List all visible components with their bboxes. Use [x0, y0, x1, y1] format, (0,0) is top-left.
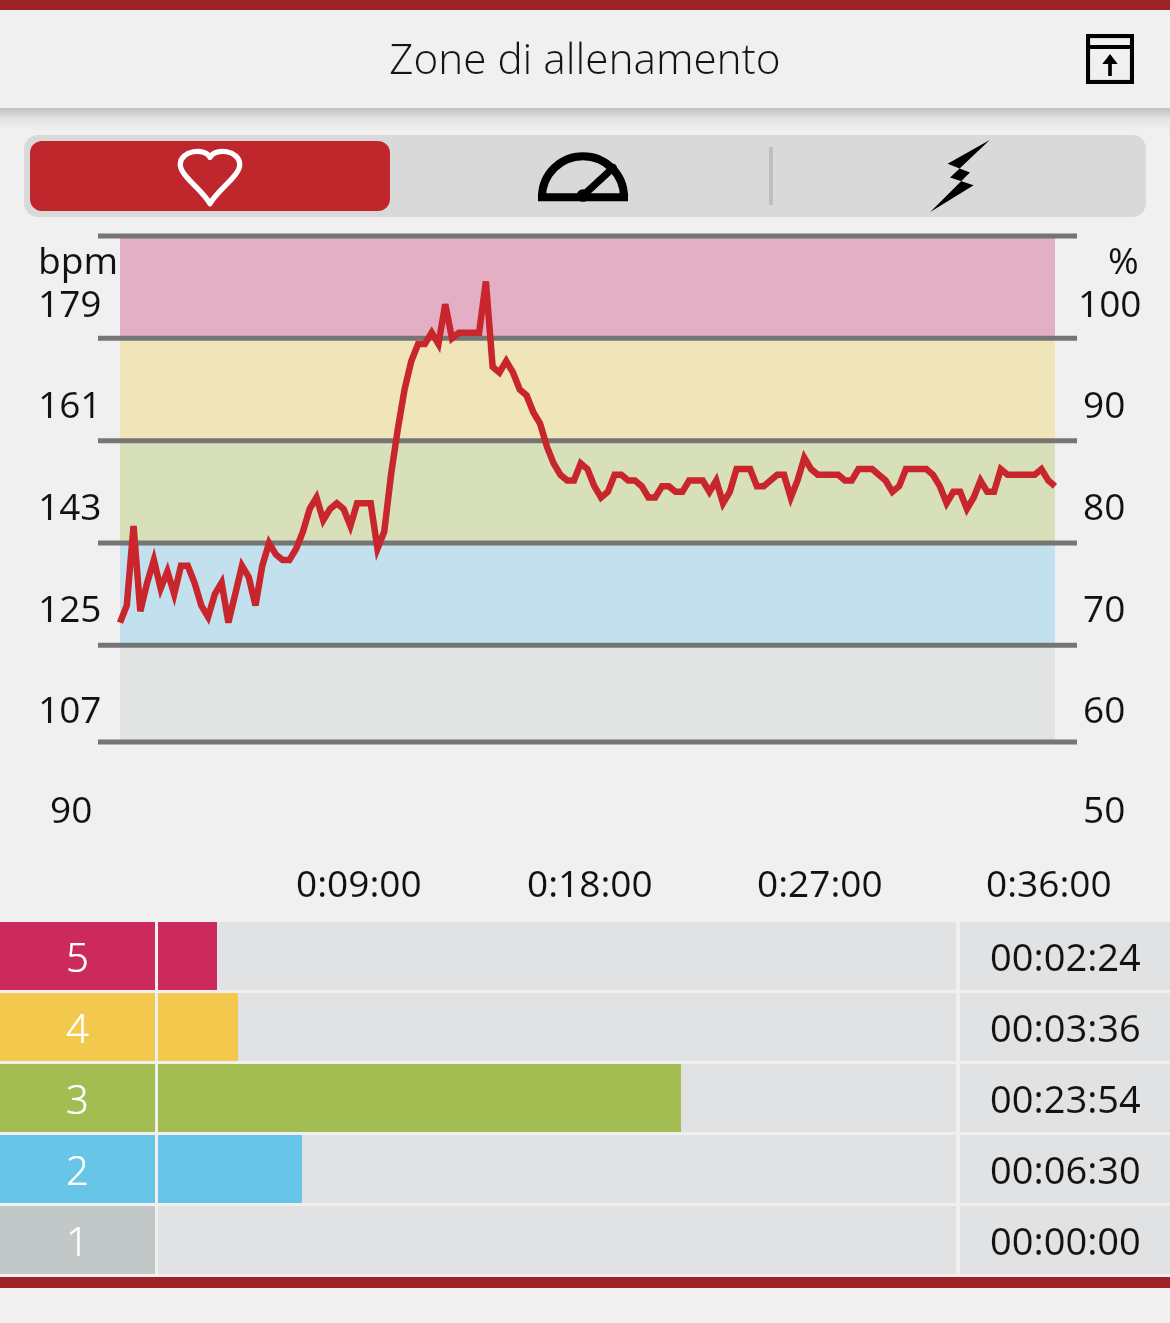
staticText: 00:03:36 [990, 1001, 1141, 1053]
button[interactable]: Frequenza cardiaca [30, 141, 390, 211]
staticText: 0:36:00 [986, 857, 1112, 907]
staticText: 90 [1083, 378, 1126, 428]
staticText: 0:27:00 [757, 857, 883, 907]
staticText: 00:23:54 [990, 1072, 1141, 1124]
button[interactable]: 2 [0, 1135, 1170, 1203]
button[interactable]: 4 [0, 993, 1170, 1061]
staticText: 80 [1083, 480, 1126, 530]
staticText: 70 [1083, 582, 1126, 632]
staticText: 5 [66, 929, 89, 983]
staticText: 179 [38, 277, 102, 327]
staticText: 143 [38, 480, 102, 530]
staticText: 0:09:00 [296, 857, 422, 907]
staticText: 161 [38, 378, 102, 428]
staticText: 2 [66, 1142, 89, 1196]
staticText: 90 [50, 783, 93, 833]
button[interactable]: 1 [0, 1206, 1170, 1274]
staticText: bpm [38, 234, 119, 284]
staticText: 0:18:00 [527, 857, 653, 907]
staticText: 4 [66, 1000, 89, 1054]
staticText: 00:06:30 [990, 1143, 1141, 1195]
staticText: % [1108, 234, 1139, 284]
button[interactable]: Esporta [1074, 23, 1146, 95]
button[interactable]: Velocità [396, 135, 769, 217]
button[interactable]: 5 [0, 922, 1170, 990]
staticText: 50 [1083, 783, 1126, 833]
staticText: Zone di allenamento [389, 29, 781, 86]
staticText: 60 [1083, 683, 1126, 733]
staticText: 00:00:00 [990, 1214, 1141, 1266]
staticText: 1 [66, 1213, 89, 1267]
button[interactable]: Potenza [773, 135, 1146, 217]
button[interactable]: 3 [0, 1064, 1170, 1132]
staticText: 125 [38, 582, 102, 632]
staticText: 3 [66, 1071, 89, 1125]
staticText: 107 [38, 683, 102, 733]
staticText: 00:02:24 [990, 930, 1141, 982]
staticText: 100 [1078, 277, 1142, 327]
